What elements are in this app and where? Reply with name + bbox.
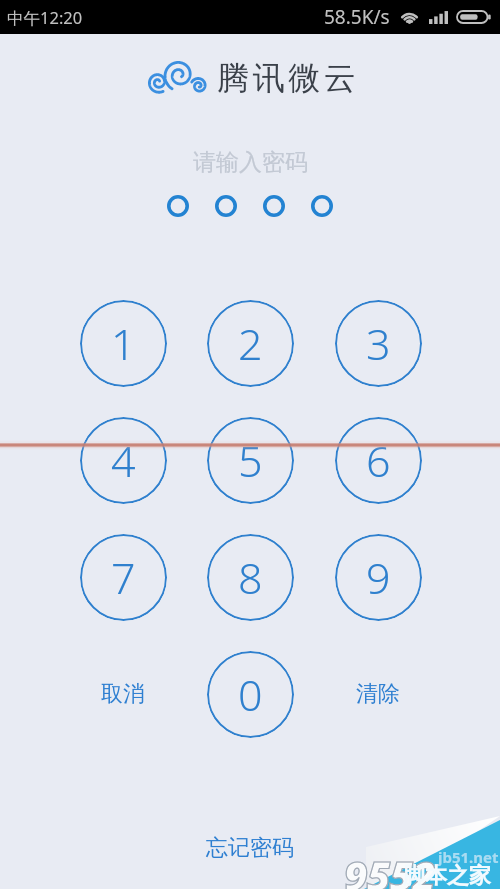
staticText: 9 bbox=[366, 548, 391, 607]
button[interactable]: 清除 bbox=[343, 672, 413, 716]
button[interactable]: 取消 bbox=[88, 672, 158, 716]
staticText: jb51.net bbox=[438, 847, 499, 867]
staticText: 腾讯微云 bbox=[217, 58, 360, 98]
staticText: 8 bbox=[238, 548, 263, 607]
button[interactable]: 3 bbox=[335, 300, 422, 387]
staticText: 0 bbox=[238, 665, 263, 724]
button[interactable]: 4 bbox=[80, 417, 167, 504]
staticText: 9552 bbox=[344, 847, 436, 889]
staticText: 5 bbox=[238, 431, 263, 490]
staticText: 忘记密码 bbox=[206, 834, 294, 862]
staticText: 取消 bbox=[101, 680, 145, 708]
button[interactable]: 5 bbox=[207, 417, 294, 504]
button[interactable]: 2 bbox=[207, 300, 294, 387]
button[interactable]: 6 bbox=[335, 417, 422, 504]
staticText: 脚本之家 bbox=[403, 862, 491, 889]
button[interactable]: 1 bbox=[80, 300, 167, 387]
button[interactable]: 9 bbox=[335, 534, 422, 621]
staticText: 请输入密码 bbox=[193, 148, 308, 177]
button[interactable]: 8 bbox=[207, 534, 294, 621]
staticText: 4 bbox=[111, 431, 136, 490]
staticText: 3 bbox=[366, 314, 391, 373]
staticText: 中午12:20 bbox=[7, 6, 83, 29]
staticText: 58.5K/s bbox=[324, 4, 390, 30]
staticText: 清除 bbox=[356, 680, 400, 708]
staticText: 1 bbox=[111, 314, 136, 373]
staticText: 9552 bbox=[344, 847, 436, 889]
staticText: 6 bbox=[366, 431, 391, 490]
staticText: 7 bbox=[111, 548, 136, 607]
button[interactable]: 7 bbox=[80, 534, 167, 621]
staticText: 2 bbox=[238, 314, 263, 373]
button[interactable]: 忘记密码 bbox=[198, 826, 302, 870]
button[interactable]: 0 bbox=[207, 651, 294, 738]
